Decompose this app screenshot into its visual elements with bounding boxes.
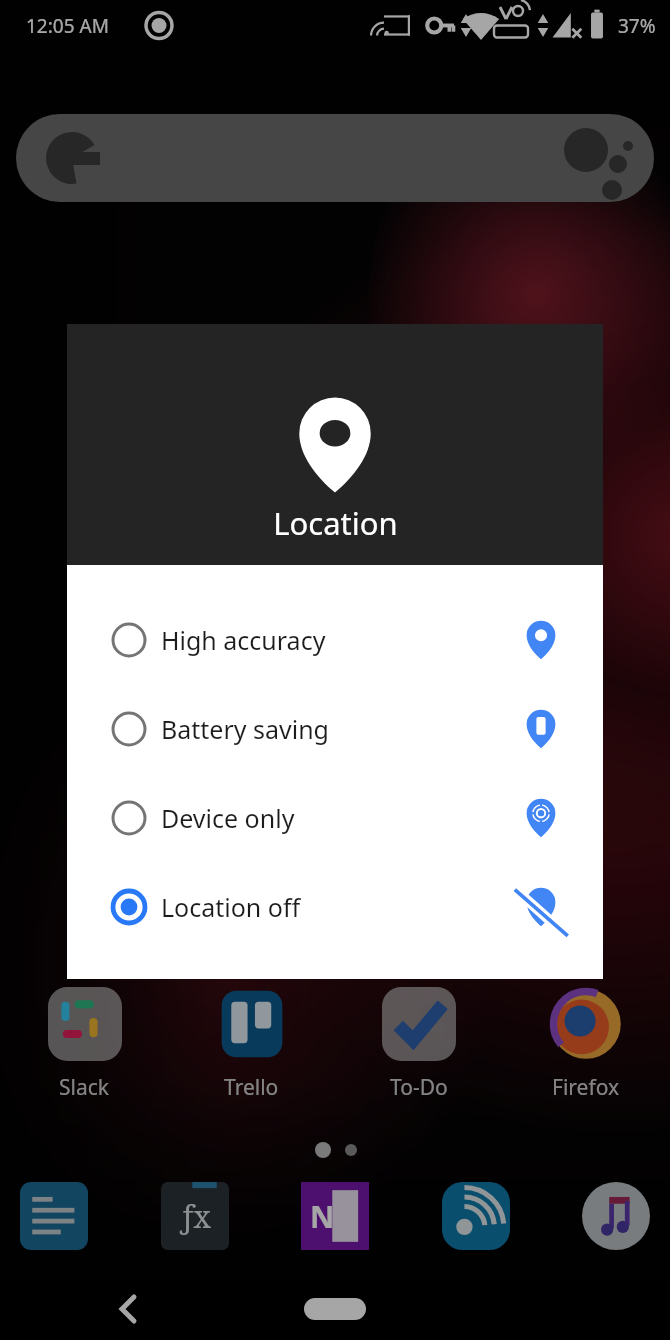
button[interactable]: Trello	[168, 987, 335, 1102]
staticText: ƒx	[180, 1196, 211, 1237]
button[interactable]: Search	[16, 114, 654, 202]
button[interactable]: Notes	[20, 1182, 88, 1250]
staticText: Location	[273, 502, 398, 544]
button[interactable]: Slack	[1, 987, 168, 1102]
staticText: 12:05 AM	[26, 13, 109, 39]
staticText: Firefox	[552, 1073, 620, 1102]
button[interactable]: Podcasts	[442, 1182, 510, 1250]
staticText: 37%	[618, 13, 656, 39]
button[interactable]: To-Do	[335, 987, 502, 1102]
staticText: Location off	[161, 890, 301, 924]
button[interactable]: Music	[582, 1182, 650, 1250]
button[interactable]: OneNote	[301, 1182, 369, 1250]
button[interactable]: Battery saving	[67, 684, 603, 773]
staticText: N	[310, 1196, 335, 1237]
staticText: Trello	[224, 1073, 279, 1102]
button[interactable]: Device only	[67, 773, 603, 862]
button[interactable]: Back	[106, 1287, 150, 1331]
staticText: Device only	[161, 801, 295, 835]
button[interactable]: Home	[304, 1298, 366, 1320]
staticText: To-Do	[390, 1073, 448, 1102]
staticText: Battery saving	[161, 712, 329, 746]
button[interactable]: High accuracy	[67, 595, 603, 684]
button[interactable]: Firefox	[502, 987, 669, 1102]
button[interactable]: Location off	[67, 862, 603, 951]
staticText: High accuracy	[161, 623, 326, 657]
button[interactable]: Formula app	[161, 1182, 229, 1250]
staticText: Slack	[59, 1073, 110, 1102]
